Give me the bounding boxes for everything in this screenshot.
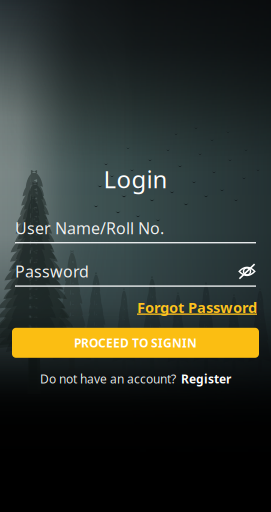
staticText: User Name/Roll No. (15, 217, 164, 239)
staticText: Login (103, 163, 167, 195)
staticText: PROCEED TO SIGNIN (74, 335, 197, 351)
button[interactable]: Register (181, 371, 231, 387)
staticText: Forgot Password (137, 298, 257, 317)
staticText: Do not have an account? (40, 371, 176, 387)
button[interactable]: Show password (238, 263, 256, 280)
button[interactable]: Forgot Password (137, 300, 257, 315)
staticText: Register (181, 371, 231, 387)
staticText: Password (15, 261, 89, 282)
button[interactable]: PROCEED TO SIGNIN (12, 328, 259, 358)
